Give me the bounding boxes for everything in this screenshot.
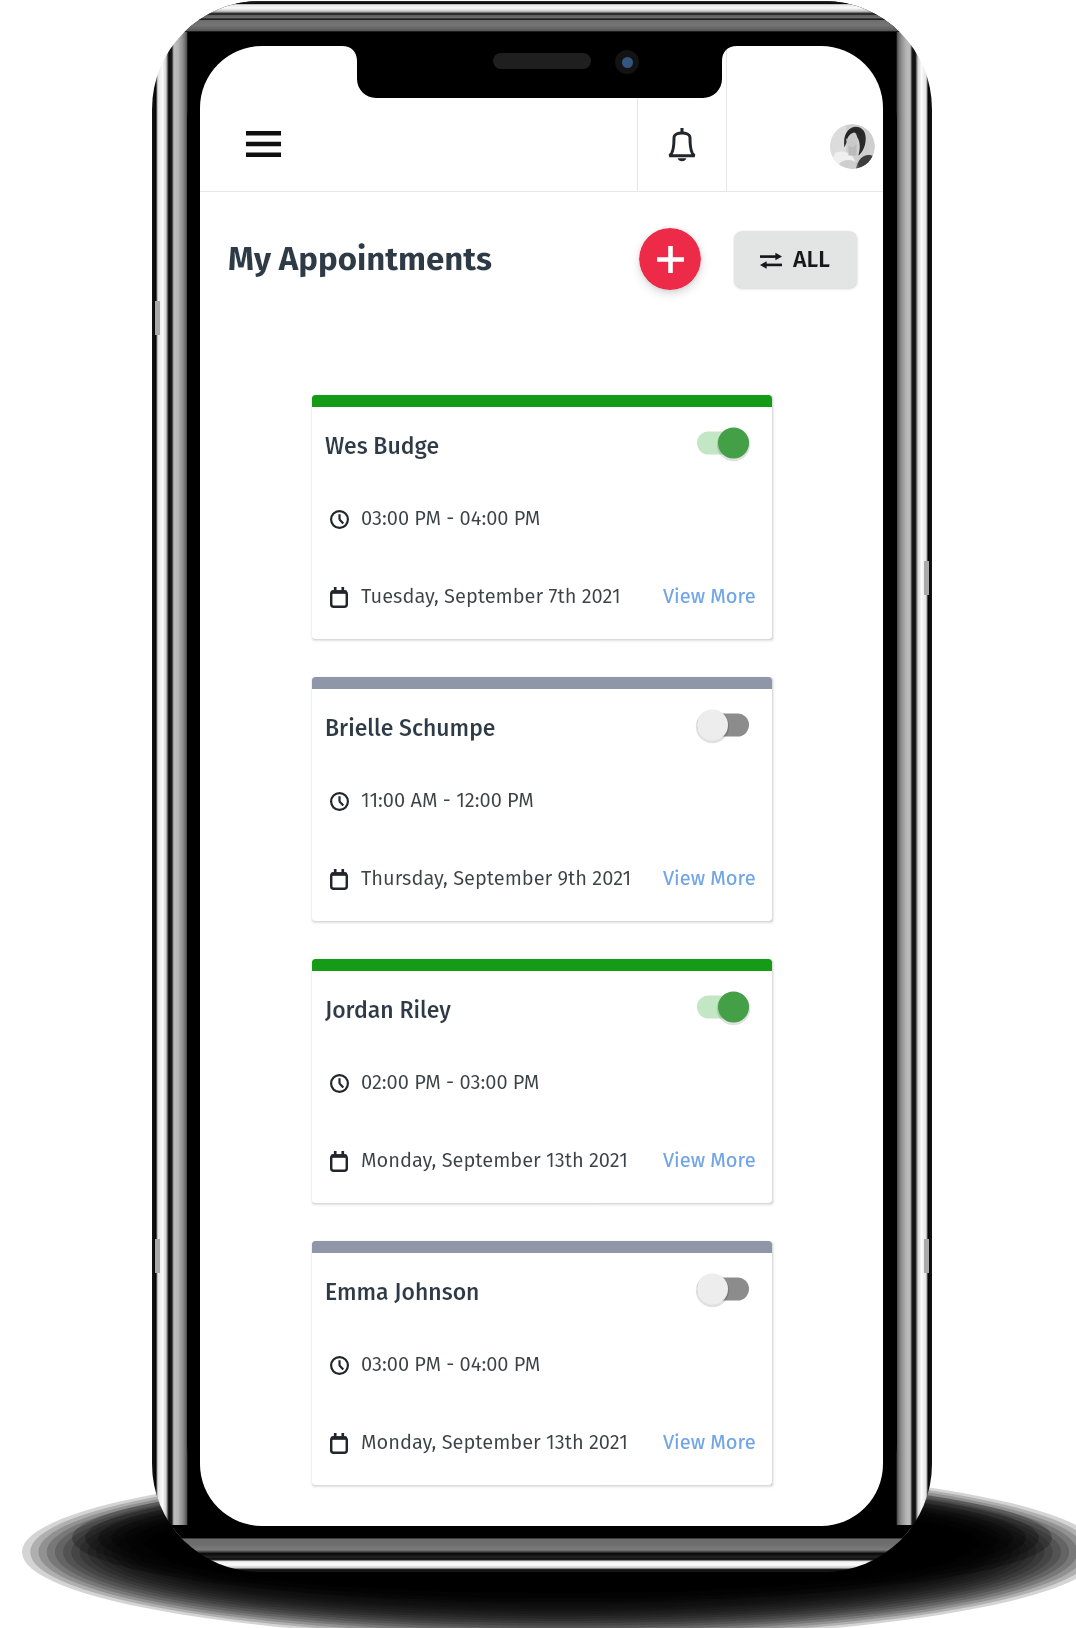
staticText: 03:00 PM - 04:00 PM bbox=[361, 1352, 541, 1376]
staticText: 11:00 AM - 12:00 PM bbox=[361, 788, 534, 812]
button[interactable]: View More bbox=[663, 1148, 756, 1172]
staticText: 03:00 PM - 04:00 PM bbox=[361, 506, 541, 530]
button[interactable]: Brielle Schumpe bbox=[312, 677, 772, 921]
staticText: Brielle Schumpe bbox=[325, 714, 496, 742]
button[interactable]: Toggle appointment bbox=[688, 422, 758, 464]
button[interactable]: Notifications bbox=[638, 46, 726, 192]
staticText: Thursday, September 9th 2021 bbox=[361, 866, 632, 890]
staticText: Tuesday, September 7th 2021 bbox=[361, 584, 621, 608]
button[interactable]: Toggle appointment bbox=[688, 986, 758, 1028]
staticText: Monday, September 13th 2021 bbox=[361, 1148, 628, 1172]
button[interactable]: Emma Johnson bbox=[312, 1241, 772, 1485]
button[interactable]: Profile bbox=[727, 46, 883, 192]
staticText: 02:00 PM - 03:00 PM bbox=[361, 1070, 540, 1094]
button[interactable]: View More bbox=[663, 584, 756, 608]
staticText: My Appointments bbox=[228, 239, 492, 279]
button[interactable]: Menu bbox=[200, 46, 637, 192]
button[interactable]: Add appointment bbox=[639, 228, 701, 290]
staticText: View More bbox=[663, 866, 756, 890]
staticText: Monday, September 13th 2021 bbox=[361, 1430, 628, 1454]
staticText: Emma Johnson bbox=[325, 1278, 480, 1306]
button[interactable]: View More bbox=[663, 1430, 756, 1454]
button[interactable]: Toggle appointment bbox=[688, 1268, 758, 1310]
staticText: ALL bbox=[793, 245, 830, 273]
button[interactable]: Toggle appointment bbox=[688, 704, 758, 746]
button[interactable]: Jordan Riley bbox=[312, 959, 772, 1203]
staticText: View More bbox=[663, 1148, 756, 1172]
button[interactable]: View More bbox=[663, 866, 756, 890]
staticText: Jordan Riley bbox=[325, 996, 451, 1024]
staticText: View More bbox=[663, 1430, 756, 1454]
staticText: Wes Budge bbox=[325, 432, 440, 460]
button[interactable]: Wes Budge bbox=[312, 395, 772, 639]
staticText: View More bbox=[663, 584, 756, 608]
button[interactable]: ALL bbox=[734, 231, 857, 288]
